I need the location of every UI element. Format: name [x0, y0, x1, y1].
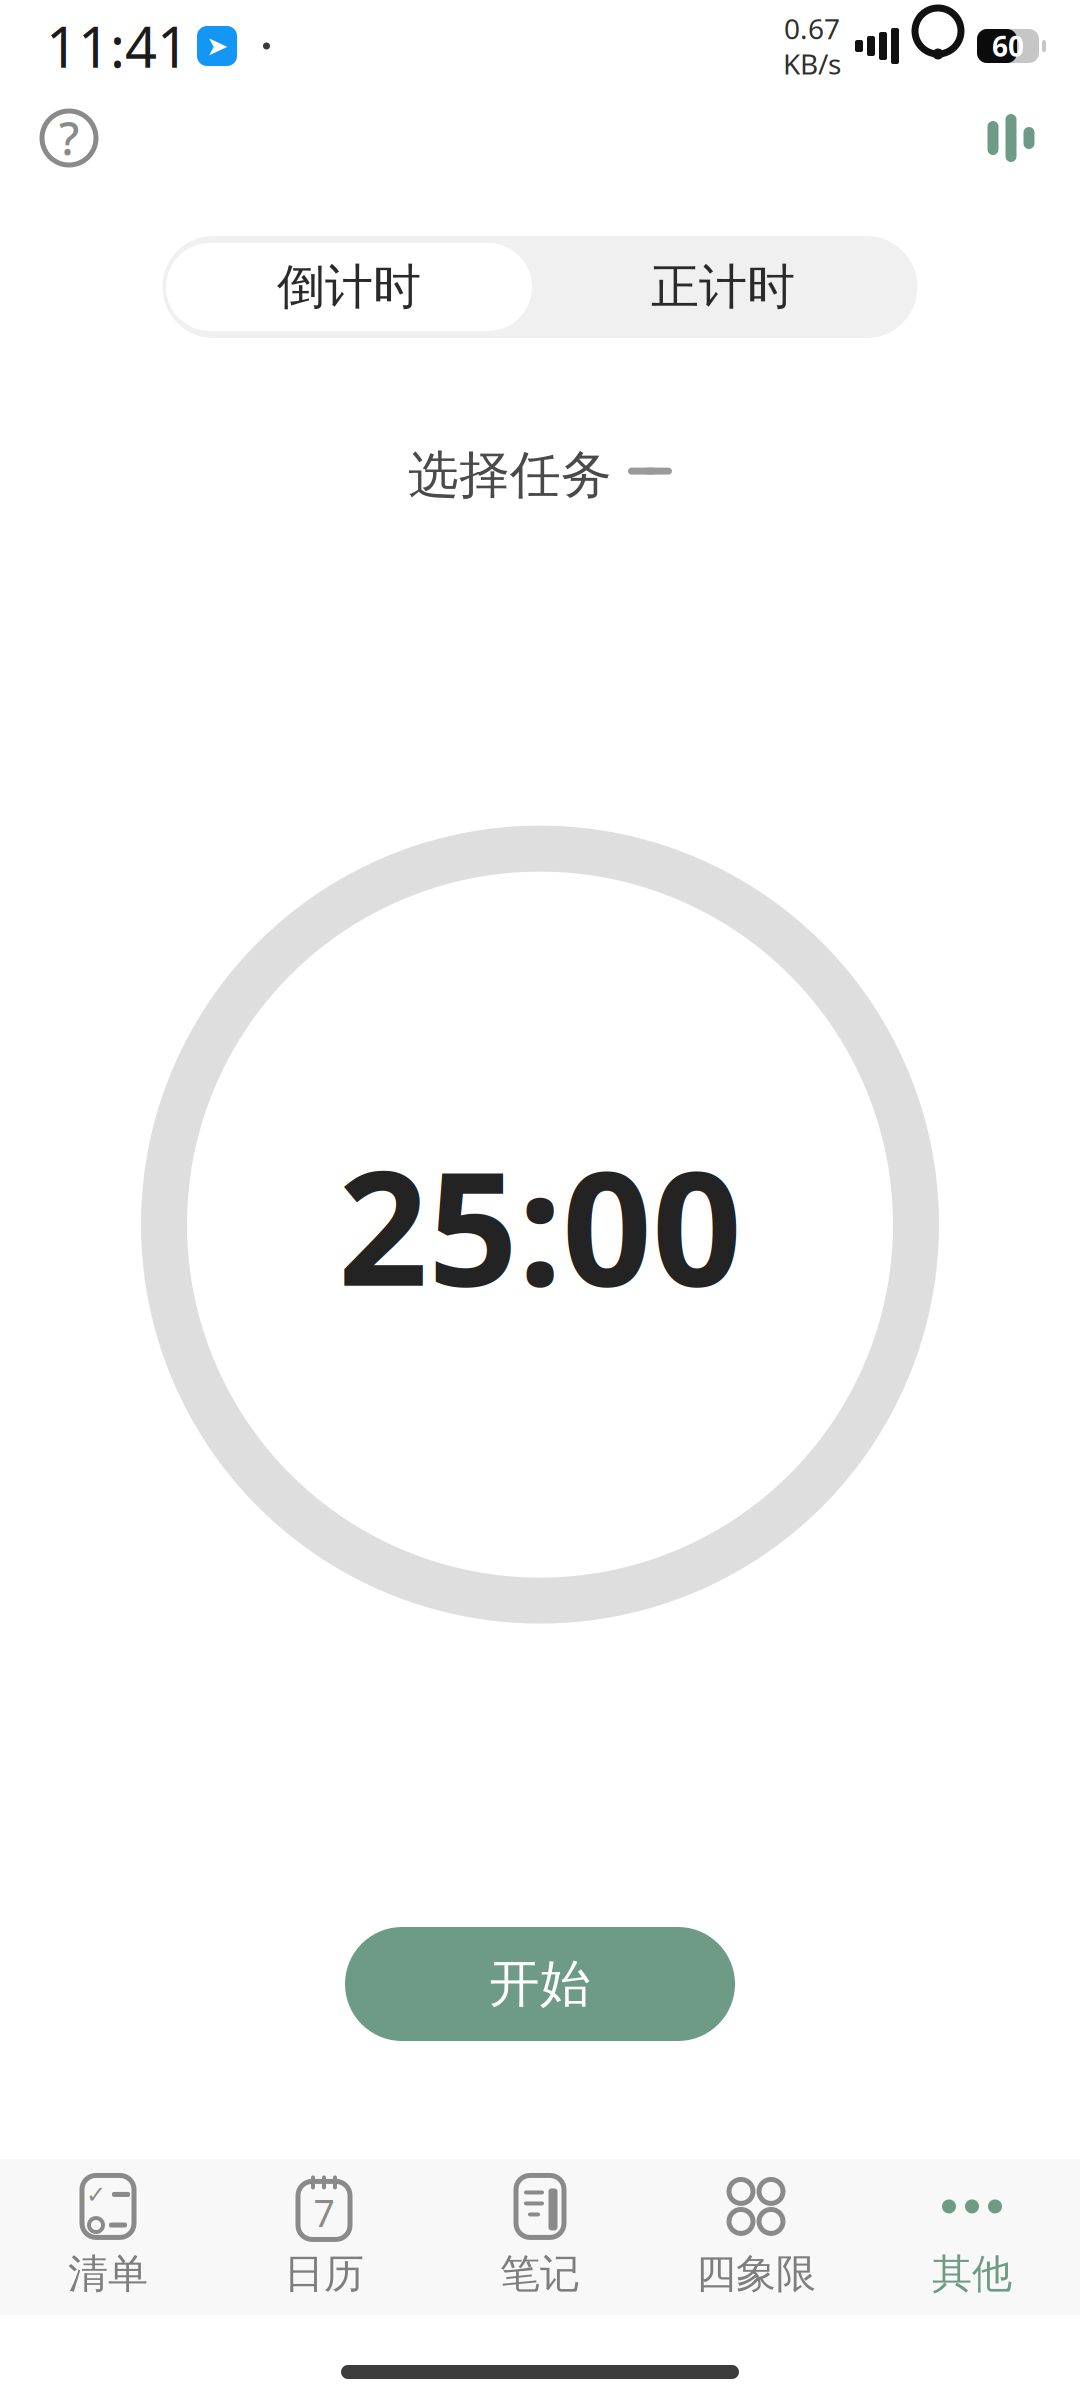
button[interactable]: 倒计时 [166, 243, 532, 331]
staticText: 60 [992, 27, 1024, 65]
staticText: 其他 [932, 2249, 1012, 2298]
staticText: ? [59, 108, 79, 168]
button[interactable]: 四象限 [648, 2159, 864, 2315]
button[interactable]: 正计时 [532, 243, 914, 331]
button[interactable]: 帮助 [26, 95, 112, 181]
staticText: 清单 [68, 2249, 148, 2298]
button[interactable]: 开始 [345, 1927, 735, 2041]
staticText: ✓ [86, 2181, 106, 2208]
staticText: 25:00 [338, 1120, 742, 1329]
button[interactable]: 其他 [864, 2159, 1080, 2315]
staticText: KB/s [783, 45, 841, 82]
staticText: 选择任务 [408, 444, 612, 506]
staticText: 0.67 [784, 10, 840, 47]
button[interactable]: 7 [216, 2159, 432, 2315]
staticText: 正计时 [651, 257, 795, 316]
staticText: 11:41 [46, 9, 189, 83]
staticText: ➤ [206, 31, 228, 61]
button[interactable]: ✓ [0, 2159, 216, 2315]
button[interactable]: 选择任务 [378, 428, 702, 522]
staticText: 四象限 [696, 2249, 816, 2298]
staticText: 7 [313, 2188, 334, 2237]
staticText: 倒计时 [277, 257, 421, 316]
staticText: 日历 [284, 2249, 364, 2298]
staticText: 笔记 [500, 2249, 580, 2298]
button[interactable]: 统计 [968, 95, 1054, 181]
button[interactable]: 笔记 [432, 2159, 648, 2315]
staticText: 开始 [489, 1953, 591, 2015]
